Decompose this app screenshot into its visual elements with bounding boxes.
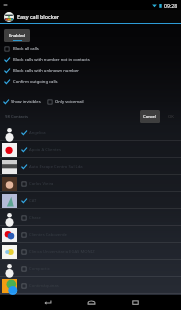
button[interactable]: Recents (113, 295, 157, 310)
button[interactable]: Apoio A Clientes (0, 141, 181, 158)
button[interactable]: Chase (0, 209, 181, 226)
staticText: Clinica Universitaria EGAS MONIZ (29, 249, 95, 255)
staticText: Block calls with number not in contacts (13, 57, 90, 63)
button[interactable]: Confirm outgoing calls (3, 76, 181, 87)
staticText: 09:28 (164, 2, 178, 9)
button[interactable]: OK (164, 110, 178, 123)
staticText: Contimáquinas (29, 283, 59, 289)
button[interactable]: Block calls with unknown number (3, 65, 181, 76)
button[interactable]: CAT (0, 192, 181, 209)
staticText: CAT (29, 198, 37, 204)
button[interactable]: Cancel (140, 110, 160, 123)
staticText: Easy call blocker (17, 13, 60, 20)
staticText: Block calls with unknown number (13, 68, 80, 74)
button[interactable]: Back (25, 295, 69, 310)
button[interactable]: Carlos Vieira (0, 175, 181, 192)
button[interactable]: Angelica (0, 124, 181, 141)
staticText: Apoio A Clientes (29, 147, 61, 153)
staticText: Only voicemail (55, 99, 84, 105)
staticText: Chase (29, 215, 41, 221)
staticText: Compactix (29, 266, 50, 272)
button[interactable]: Only voicemail (47, 99, 84, 105)
staticText: 98 Contacts (5, 114, 29, 120)
button[interactable]: Block calls with number not in contacts (3, 54, 181, 65)
staticText: Clientes Caboverde (29, 232, 67, 238)
button[interactable]: Clientes Caboverde (0, 226, 181, 243)
button[interactable]: Show invisibles (3, 99, 41, 105)
staticText: Auto Escape Centro Sul Lda (29, 164, 83, 170)
staticText: Enabled (9, 33, 25, 39)
button[interactable]: Contimáquinas (0, 277, 181, 294)
staticText: Confirm outgoing calls (13, 79, 58, 85)
staticText: OK (168, 114, 174, 120)
button[interactable]: Compactix (0, 260, 181, 277)
staticText: Cancel (143, 114, 157, 120)
button[interactable]: Block all calls (3, 43, 181, 54)
staticText: Block all calls (13, 46, 39, 52)
staticText: Show invisibles (11, 99, 41, 105)
button[interactable]: Auto Escape Centro Sul Lda (0, 158, 181, 175)
button[interactable]: Home (69, 295, 113, 310)
button[interactable]: Enabled (4, 29, 30, 42)
staticText: Carlos Vieira (29, 181, 54, 187)
button[interactable]: Clinica Universitaria EGAS MONIZ (0, 243, 181, 260)
staticText: Angelica (29, 130, 46, 136)
